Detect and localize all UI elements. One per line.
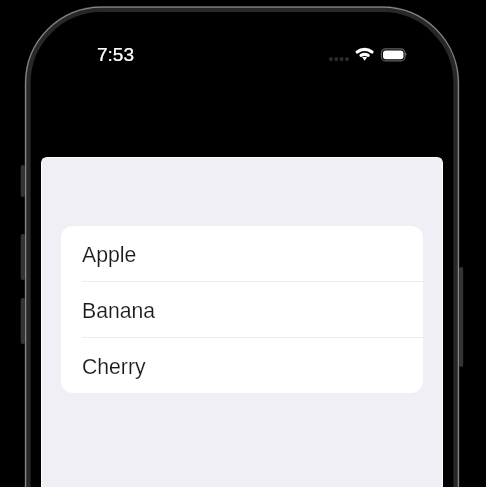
staticText: Banana bbox=[82, 299, 156, 323]
button[interactable]: Apple bbox=[61, 226, 423, 282]
staticText: Cherry bbox=[82, 355, 146, 379]
button[interactable]: Banana bbox=[61, 282, 423, 338]
button[interactable]: Cherry bbox=[61, 338, 423, 393]
staticText: Apple bbox=[82, 243, 137, 267]
other: Cellular signal, Wi-Fi and battery statu… bbox=[325, 42, 413, 66]
staticText: 7:53 bbox=[97, 44, 134, 65]
